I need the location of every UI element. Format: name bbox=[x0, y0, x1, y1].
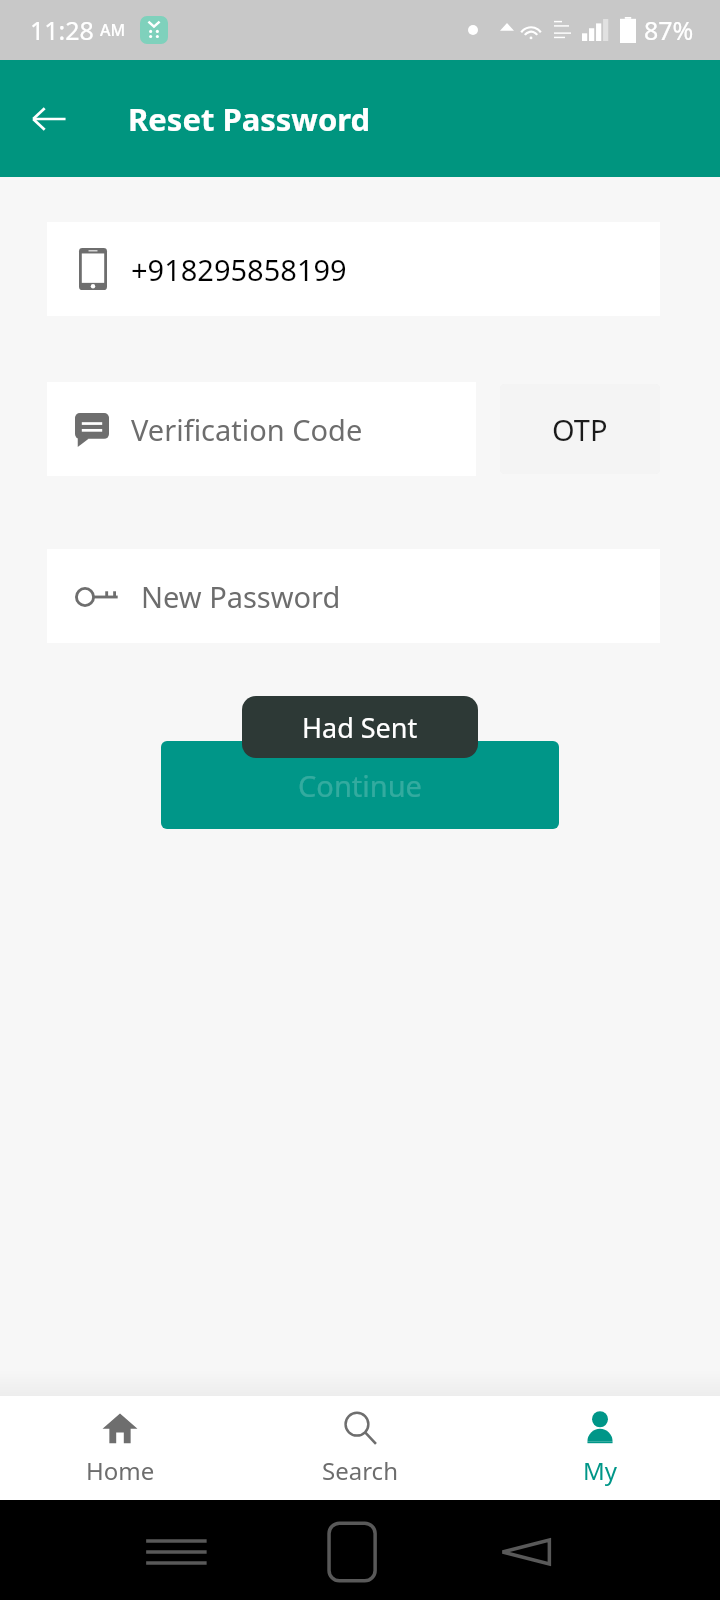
staticText: AM bbox=[100, 19, 126, 41]
staticText: My bbox=[583, 1454, 618, 1487]
staticText: Home bbox=[86, 1454, 155, 1487]
button[interactable]: My bbox=[480, 1396, 720, 1500]
button[interactable]: Home bbox=[0, 1396, 240, 1500]
staticText: Continue bbox=[298, 766, 422, 805]
button[interactable]: Verification Code bbox=[47, 382, 476, 476]
staticText: Reset Password bbox=[128, 98, 371, 140]
button[interactable]: Back bbox=[18, 88, 80, 150]
button[interactable]: Continue bbox=[161, 741, 559, 829]
button[interactable]: New Password bbox=[47, 549, 660, 643]
staticText: 87% bbox=[644, 13, 694, 47]
button[interactable]: OTP bbox=[500, 384, 660, 474]
staticText: Verification Code bbox=[131, 410, 363, 449]
button[interactable]: +918295858199 bbox=[47, 222, 660, 316]
staticText: Search bbox=[322, 1454, 398, 1487]
staticText: OTP bbox=[552, 410, 608, 449]
staticText: Had Sent bbox=[302, 709, 418, 746]
button[interactable]: Search bbox=[240, 1396, 480, 1500]
staticText: +918295858199 bbox=[131, 250, 347, 289]
staticText: New Password bbox=[141, 577, 341, 616]
staticText: 11:28 bbox=[30, 13, 94, 47]
